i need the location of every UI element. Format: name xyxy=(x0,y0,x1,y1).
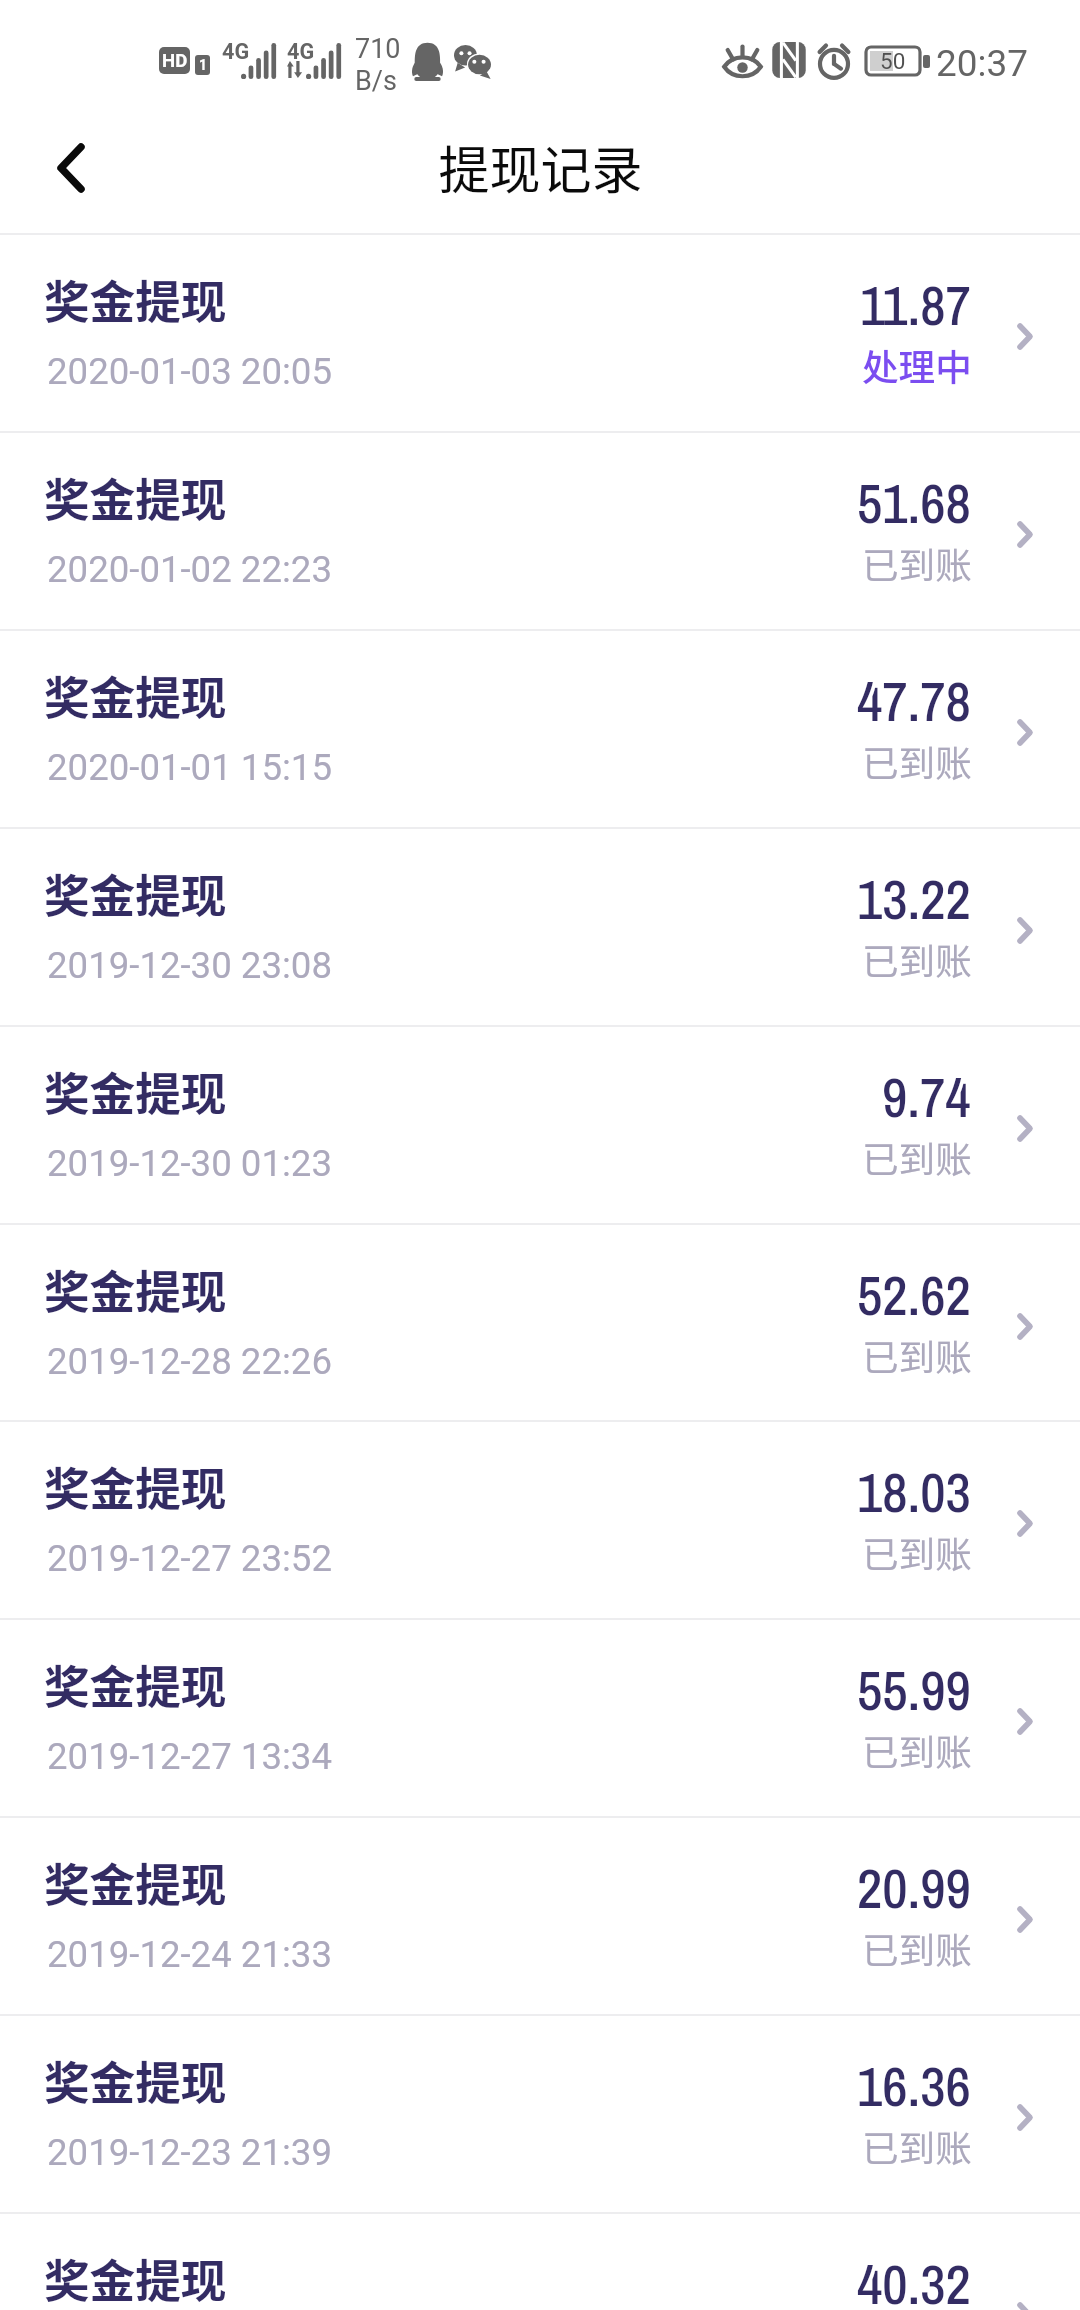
staticText: 奖金提现 xyxy=(44,2047,227,2113)
staticText: 13.22 xyxy=(857,862,971,937)
staticText: 已到账 xyxy=(862,933,972,986)
staticText: 2019-12-27 23:52 xyxy=(47,1537,332,1580)
staticText: 1 xyxy=(199,57,207,73)
staticText: 20.99 xyxy=(857,1851,971,1926)
staticText: 40.32 xyxy=(857,2247,971,2310)
staticText: 已到账 xyxy=(862,735,972,788)
button[interactable]: 奖金提现 xyxy=(0,1027,1080,1223)
button[interactable]: 奖金提现 xyxy=(0,829,1080,1025)
staticText: 11.87 xyxy=(860,268,971,343)
staticText: 提现记录 xyxy=(438,130,643,204)
button[interactable]: Back xyxy=(29,118,113,218)
staticText: 9.74 xyxy=(882,1060,971,1135)
button[interactable]: 奖金提现 xyxy=(0,2214,1080,2310)
staticText: 2019-12-28 22:26 xyxy=(47,1340,332,1383)
staticText: 2020-01-02 22:23 xyxy=(47,548,332,591)
staticText: 2020-01-01 15:15 xyxy=(47,746,332,789)
staticText: 2019-12-23 21:39 xyxy=(47,2131,332,2174)
staticText: 20:37 xyxy=(936,42,1028,85)
staticText: 已到账 xyxy=(862,2120,972,2173)
staticText: 已到账 xyxy=(862,1131,972,1184)
button[interactable]: 奖金提现 xyxy=(0,433,1080,629)
staticText: B/s xyxy=(355,65,397,97)
staticText: 奖金提现 xyxy=(44,464,227,530)
staticText: 47.78 xyxy=(857,664,971,739)
button[interactable]: 奖金提现 xyxy=(0,2016,1080,2212)
staticText: 奖金提现 xyxy=(44,1256,227,1322)
staticText: 处理中 xyxy=(862,339,972,392)
staticText: 已到账 xyxy=(862,1526,972,1579)
staticText: 已到账 xyxy=(862,1922,972,1975)
staticText: 奖金提现 xyxy=(44,860,227,926)
staticText: 710 xyxy=(355,33,401,65)
staticText: 奖金提现 xyxy=(44,1058,227,1124)
button[interactable]: 奖金提现 xyxy=(0,631,1080,827)
staticText: 2019-12-24 21:33 xyxy=(47,1933,332,1976)
staticText: 已到账 xyxy=(862,537,972,590)
button[interactable]: 奖金提现 xyxy=(0,1818,1080,2014)
staticText: 奖金提现 xyxy=(44,1651,227,1717)
staticText: 已到账 xyxy=(862,1329,972,1382)
staticText: HD xyxy=(162,50,188,72)
staticText: 4G xyxy=(222,39,250,64)
staticText: 2019-12-30 23:08 xyxy=(47,944,332,987)
staticText: 52.62 xyxy=(857,1258,971,1333)
staticText: 18.03 xyxy=(857,1455,971,1530)
staticText: 奖金提现 xyxy=(44,266,227,332)
staticText: 奖金提现 xyxy=(44,2245,227,2310)
staticText: 51.68 xyxy=(857,466,971,541)
staticText: 16.36 xyxy=(857,2049,971,2124)
staticText: 奖金提现 xyxy=(44,1849,227,1915)
button[interactable]: 奖金提现 xyxy=(0,1225,1080,1421)
staticText: 2019-12-30 01:23 xyxy=(47,1142,332,1185)
staticText: 2020-01-03 20:05 xyxy=(47,350,332,393)
staticText: 奖金提现 xyxy=(44,1453,227,1519)
button[interactable]: 奖金提现 xyxy=(0,235,1080,431)
staticText: 55.99 xyxy=(857,1653,971,1728)
button[interactable]: 奖金提现 xyxy=(0,1620,1080,1816)
staticText: 已到账 xyxy=(862,1724,972,1777)
button[interactable]: 奖金提现 xyxy=(0,1422,1080,1618)
staticText: 2019-12-27 13:34 xyxy=(47,1735,332,1778)
staticText: 奖金提现 xyxy=(44,662,227,728)
staticText: 50 xyxy=(880,48,906,74)
staticText: 4G xyxy=(287,39,315,64)
